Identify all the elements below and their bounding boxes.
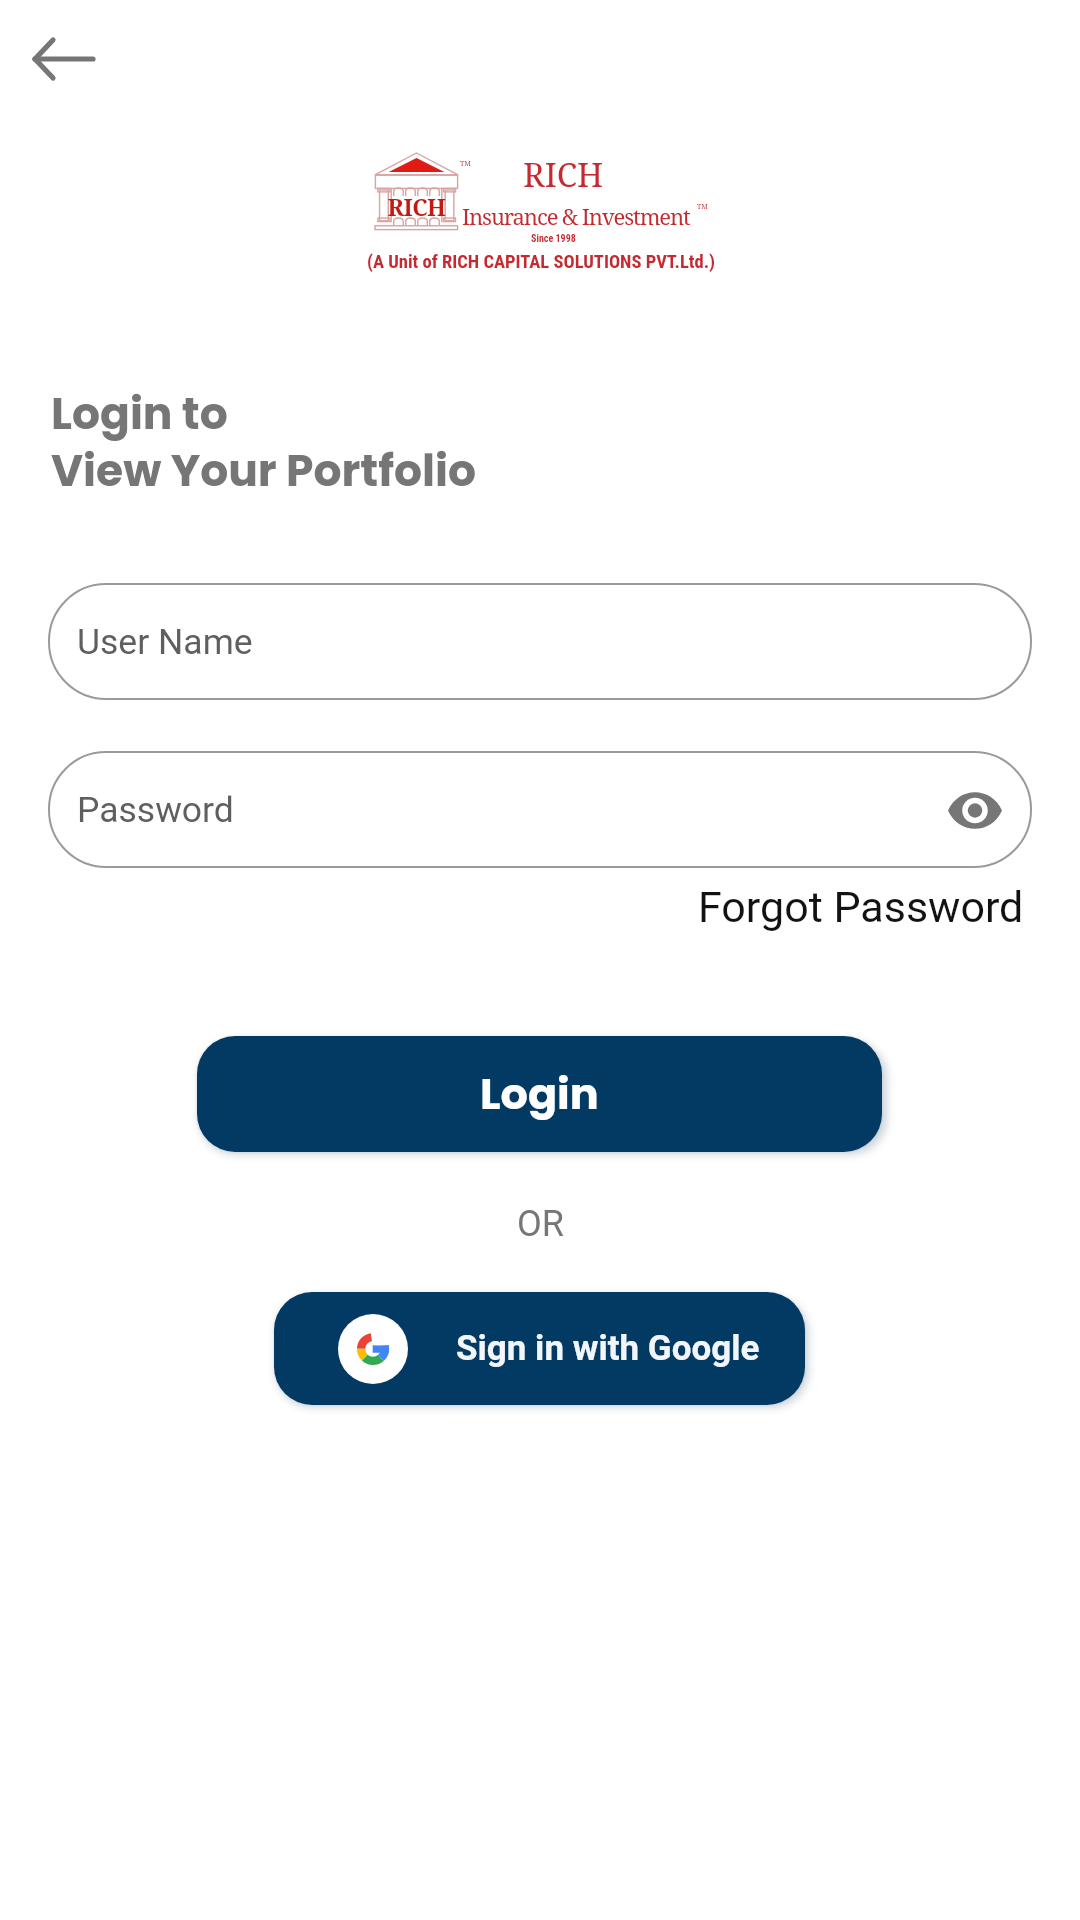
staticText: Forgot Password: [698, 882, 1024, 932]
button[interactable]: User Name: [48, 583, 1032, 700]
staticText: OR: [517, 1203, 564, 1245]
staticText: User Name: [77, 621, 253, 663]
button[interactable]: Login: [197, 1036, 882, 1152]
button[interactable]: Password: [48, 751, 1032, 868]
staticText: Login to View Your Portfolio: [51, 383, 477, 501]
button[interactable]: Show password: [937, 772, 1013, 848]
staticText: TM: [460, 159, 471, 169]
staticText: (A Unit of RICH CAPITAL SOLUTIONS PVT.Lt…: [366, 251, 716, 273]
staticText: RICH: [523, 152, 604, 197]
staticText: RICH: [384, 191, 449, 222]
button[interactable]: Sign in with Google: [274, 1292, 805, 1405]
staticText: Password: [77, 789, 234, 831]
staticText: Since 1998: [531, 233, 576, 245]
staticText: Sign in with Google: [456, 1328, 760, 1369]
staticText: Insurance & Investment: [462, 201, 690, 231]
button[interactable]: Forgot Password: [698, 882, 1024, 932]
staticText: Login: [480, 1064, 599, 1124]
button[interactable]: Back: [25, 21, 101, 97]
staticText: TM: [697, 202, 708, 212]
